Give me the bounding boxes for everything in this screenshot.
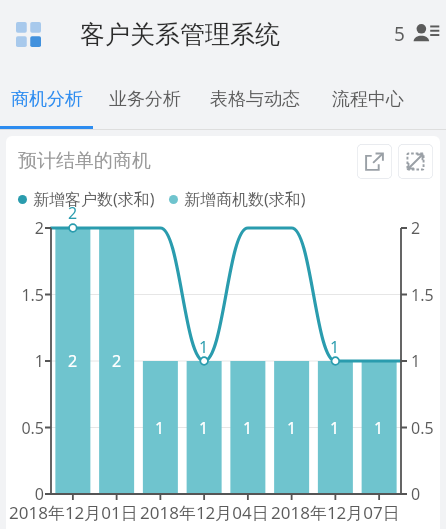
staticText: 2018年12月01日: [9, 501, 138, 524]
staticText: 0.5: [21, 417, 44, 439]
button[interactable]: Apps: [6, 12, 50, 56]
staticText: 业务分析: [109, 88, 181, 111]
staticText: 2018年12月07日: [271, 501, 400, 524]
staticText: 2: [411, 217, 421, 239]
staticText: 5: [394, 21, 405, 47]
staticText: 1: [34, 350, 44, 372]
staticText: 新增商机数(求和): [184, 188, 306, 210]
staticText: 1: [199, 417, 209, 439]
button[interactable]: 表格与动态: [197, 68, 313, 130]
staticText: 0: [411, 483, 421, 505]
staticText: 0: [34, 483, 44, 505]
staticText: 1: [199, 336, 209, 358]
staticText: 1: [243, 417, 253, 439]
staticText: 商机分析: [11, 88, 83, 111]
staticText: 1: [411, 350, 421, 372]
staticText: 新增客户数(求和): [33, 188, 155, 210]
staticText: 2018年12月04日: [140, 501, 269, 524]
button[interactable]: 业务分析: [93, 68, 197, 130]
button[interactable]: 流程中心: [313, 68, 423, 130]
staticText: 流程中心: [332, 88, 404, 111]
staticText: 1: [374, 417, 384, 439]
staticText: 1: [155, 417, 165, 439]
staticText: 1: [330, 417, 340, 439]
staticText: 2: [68, 202, 78, 224]
button[interactable]: 商机分析: [0, 68, 93, 130]
staticText: 0.5: [411, 417, 434, 439]
button[interactable]: Fullscreen: [398, 144, 433, 179]
staticText: 1.5: [21, 284, 44, 306]
staticText: 1.5: [411, 284, 434, 306]
button[interactable]: Open in new window: [357, 144, 392, 179]
staticText: 预计结单的商机: [18, 149, 151, 173]
staticText: 1: [330, 336, 340, 358]
staticText: 2: [68, 350, 78, 372]
staticText: 表格与动态: [210, 88, 300, 111]
staticText: 2: [34, 217, 44, 239]
button[interactable]: Contacts: [412, 17, 446, 51]
staticText: 客户关系管理系统: [80, 19, 280, 50]
staticText: 2: [112, 350, 122, 372]
staticText: 1: [287, 417, 297, 439]
